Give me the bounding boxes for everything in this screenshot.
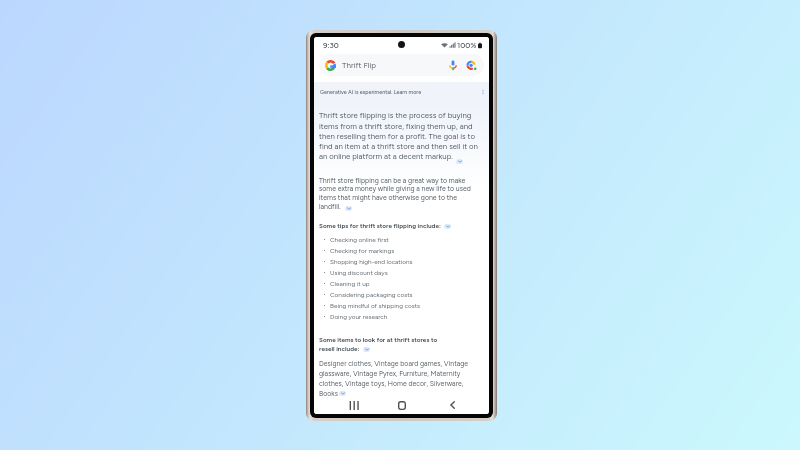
button[interactable]: Expand bbox=[339, 391, 346, 396]
staticText: Some tips for thrift store flipping incl… bbox=[319, 222, 441, 230]
button[interactable]: Expand bbox=[363, 347, 370, 352]
button[interactable]: Checking for markings bbox=[319, 245, 484, 256]
staticText: 100% bbox=[457, 41, 477, 50]
button[interactable]: Recent apps bbox=[343, 396, 363, 414]
staticText: Checking online first bbox=[330, 236, 389, 244]
button[interactable]: Using discount days bbox=[319, 267, 484, 278]
button[interactable]: Expand bbox=[456, 159, 463, 164]
staticText: resell include: bbox=[319, 345, 360, 353]
staticText: Thrift store flipping can be a great way… bbox=[319, 176, 471, 211]
button[interactable]: Considering packaging costs bbox=[319, 289, 484, 300]
button[interactable]: Expand bbox=[444, 224, 451, 229]
button[interactable]: More options bbox=[478, 87, 487, 96]
staticText: Shopping high-end locations bbox=[330, 258, 413, 266]
button[interactable]: Shopping high-end locations bbox=[319, 256, 484, 267]
staticText: Designer clothes, Vintage board games, V… bbox=[319, 359, 469, 398]
staticText: Some items to look for at thrift stores … bbox=[319, 336, 438, 344]
staticText: Thrift Flip bbox=[342, 60, 377, 70]
staticText: Being mindful of shipping costs bbox=[330, 302, 421, 310]
button[interactable]: Doing your research bbox=[319, 311, 484, 322]
staticText: Thrift store flipping is the process of … bbox=[319, 111, 478, 161]
button[interactable]: Checking online first bbox=[319, 234, 484, 245]
button[interactable]: Cleaning it up bbox=[319, 278, 484, 289]
staticText: Checking for markings bbox=[330, 247, 395, 255]
button[interactable]: Expand bbox=[345, 206, 352, 211]
staticText: 9:30 bbox=[323, 41, 339, 50]
staticText: Using discount days bbox=[330, 269, 388, 277]
staticText: Doing your research bbox=[330, 313, 388, 321]
button[interactable]: Voice search bbox=[448, 60, 458, 70]
staticText: Considering packaging costs bbox=[330, 291, 413, 299]
button[interactable]: Being mindful of shipping costs bbox=[319, 300, 484, 311]
button[interactable]: Home bbox=[392, 396, 412, 414]
button[interactable]: Thrift Flip bbox=[319, 54, 484, 76]
staticText: Generative AI is experimental. Learn mor… bbox=[320, 89, 422, 95]
button[interactable]: Back bbox=[442, 396, 462, 414]
button[interactable]: Google Lens bbox=[466, 60, 477, 71]
staticText: Cleaning it up bbox=[330, 280, 370, 288]
